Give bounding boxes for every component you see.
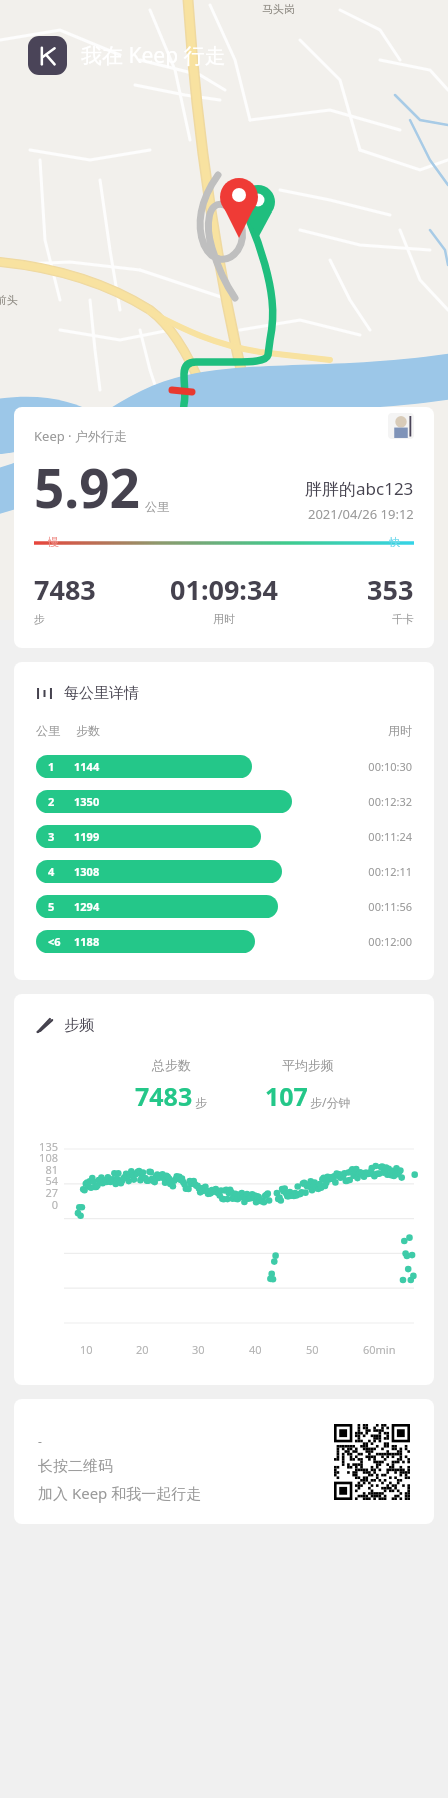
staticText: 5 <box>48 899 55 914</box>
staticText: 50 <box>306 1342 319 1357</box>
staticText: 步/分钟 <box>310 1094 351 1110</box>
staticText: 公里 <box>36 723 60 738</box>
button[interactable]: <6 <box>36 927 412 956</box>
staticText: 1199 <box>74 829 100 844</box>
staticText: 慢 <box>48 535 59 547</box>
staticText: 公里 <box>145 499 169 514</box>
staticText: 353 <box>367 571 414 608</box>
staticText: 27 <box>28 1185 58 1200</box>
staticText: 步数 <box>76 723 100 738</box>
button[interactable]: - <box>14 1399 434 1524</box>
staticText: 步 <box>34 612 45 626</box>
staticText: 3 <box>48 829 55 844</box>
staticText: 40 <box>249 1342 262 1357</box>
staticText: 快 <box>389 535 400 547</box>
staticText: - <box>38 1433 42 1449</box>
staticText: 总步数 <box>152 1057 191 1073</box>
staticText: <6 <box>48 934 61 949</box>
staticText: 0 <box>28 1197 58 1212</box>
staticText: 5.92 <box>34 451 140 523</box>
staticText: 每公里详情 <box>64 684 139 703</box>
staticText: 2 <box>48 794 55 809</box>
staticText: 30 <box>192 1342 205 1357</box>
staticText: 加入 Keep 和我一起行走 <box>38 1483 202 1503</box>
staticText: 步频 <box>64 1016 94 1035</box>
staticText: 00:11:56 <box>354 899 412 914</box>
staticText: 长按二维码 <box>38 1457 113 1476</box>
staticText: 20 <box>136 1342 149 1357</box>
staticText: 4 <box>48 864 55 879</box>
staticText: 00:11:24 <box>354 829 412 844</box>
button[interactable]: 3 <box>36 822 412 851</box>
staticText: 1294 <box>74 899 100 914</box>
staticText: 用时 <box>388 723 412 738</box>
staticText: 10 <box>80 1342 93 1357</box>
staticText: 60min <box>363 1342 396 1357</box>
staticText: 2021/04/26 19:12 <box>308 505 414 523</box>
button[interactable]: User avatar <box>388 413 414 439</box>
staticText: 135 <box>28 1139 58 1154</box>
staticText: 54 <box>28 1173 58 1188</box>
staticText: 胖胖的abc123 <box>305 477 414 500</box>
button[interactable]: 5 <box>36 892 412 921</box>
button[interactable]: 2 <box>36 787 412 816</box>
staticText: 00:10:30 <box>354 759 412 774</box>
staticText: 平均步频 <box>282 1057 334 1073</box>
staticText: 用时 <box>213 612 235 626</box>
button[interactable]: 1 <box>36 752 412 781</box>
staticText: 108 <box>28 1150 58 1165</box>
staticText: 7483 <box>34 571 96 608</box>
staticText: 前头 <box>0 293 18 307</box>
staticText: 步 <box>195 1095 207 1110</box>
staticText: 1 <box>48 759 55 774</box>
button[interactable]: Keep logo <box>28 36 67 75</box>
staticText: 7483 <box>135 1079 193 1113</box>
staticText: 01:09:34 <box>170 571 278 608</box>
staticText: 千卡 <box>392 612 414 626</box>
button[interactable]: 4 <box>36 857 412 886</box>
staticText: 00:12:11 <box>354 864 412 879</box>
staticText: 1350 <box>74 794 100 809</box>
staticText: 1308 <box>74 864 100 879</box>
staticText: 1188 <box>74 934 100 949</box>
staticText: 00:12:32 <box>354 794 412 809</box>
staticText: 1144 <box>74 759 100 774</box>
staticText: 我在 Keep 行走 <box>81 41 226 70</box>
staticText: 107 <box>265 1079 308 1113</box>
staticText: Keep · 户外行走 <box>34 427 127 445</box>
staticText: 马头岗 <box>262 2 295 16</box>
staticText: 00:12:00 <box>354 934 412 949</box>
staticText: 81 <box>28 1162 58 1177</box>
